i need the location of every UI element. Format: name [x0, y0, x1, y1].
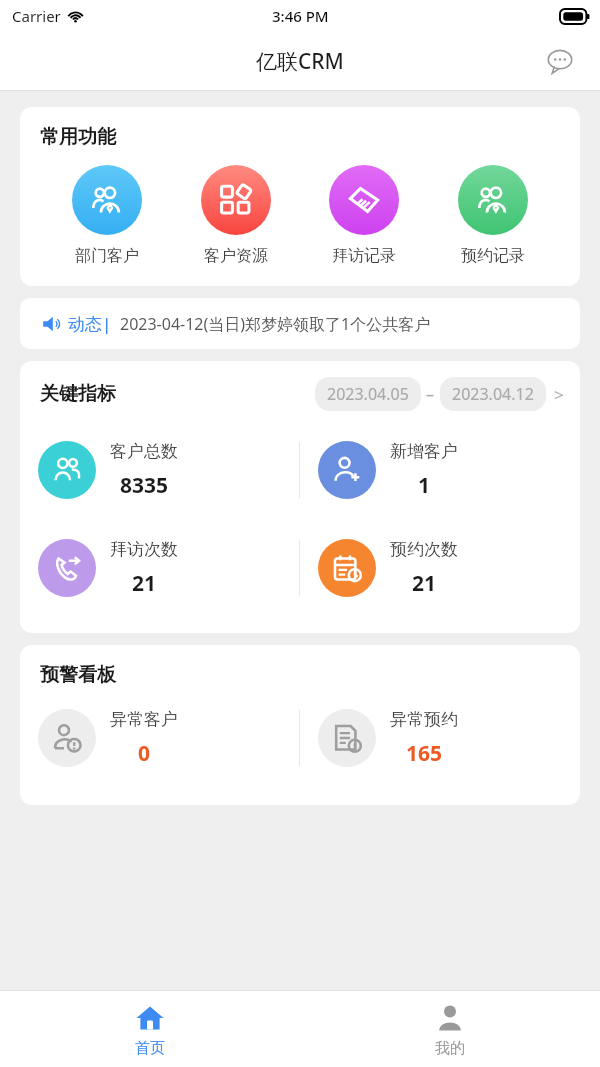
staticText: 首页 — [135, 1039, 165, 1058]
button[interactable]: 异常预约 — [300, 691, 580, 785]
button[interactable]: 异常客户 — [20, 691, 299, 785]
button[interactable]: 拜访记录 — [323, 163, 405, 268]
button[interactable]: 部门客户 — [66, 163, 148, 268]
staticText: 2023-04-12(当日)郑梦婷领取了1个公共客户 — [120, 313, 431, 335]
button[interactable]: 我的 — [300, 991, 600, 1067]
button[interactable]: 客户总数 — [20, 421, 299, 519]
staticText: 我的 — [435, 1039, 465, 1058]
staticText: 拜访记录 — [332, 246, 396, 266]
staticText: 1 — [418, 471, 431, 500]
staticText: 8335 — [120, 471, 169, 500]
staticText: 客户总数 — [110, 441, 178, 462]
staticText: 预约次数 — [390, 539, 458, 560]
staticText: 关键指标 — [40, 382, 116, 406]
button[interactable]: 预约次数 — [300, 519, 580, 617]
staticText: 异常客户 — [110, 709, 178, 730]
staticText: 2023.04.12 — [452, 383, 534, 405]
staticText: 拜访次数 — [110, 539, 178, 560]
button[interactable]: 预约记录 — [452, 163, 534, 268]
button[interactable]: 拜访次数 — [20, 519, 299, 617]
staticText: 165 — [406, 739, 443, 768]
button[interactable]: Messages — [542, 43, 578, 79]
staticText: 21 — [412, 569, 437, 598]
button[interactable]: 2023.04.05 — [315, 377, 564, 411]
staticText: 异常预约 — [390, 709, 458, 730]
button[interactable]: 动态| — [20, 298, 580, 349]
staticText: Carrier — [12, 6, 61, 26]
staticText: 新增客户 — [390, 441, 458, 462]
staticText: 预警看板 — [40, 663, 116, 687]
staticText: 客户资源 — [204, 246, 268, 266]
staticText: – — [426, 383, 435, 405]
staticText: 0 — [138, 739, 151, 768]
staticText: > — [554, 383, 564, 406]
button[interactable]: 新增客户 — [300, 421, 580, 519]
staticText: 动态| — [68, 312, 112, 335]
staticText: 常用功能 — [40, 125, 116, 149]
staticText: 3:46 PM — [272, 6, 329, 26]
button[interactable]: 首页 — [0, 991, 300, 1067]
button[interactable]: 客户资源 — [195, 163, 277, 268]
staticText: 预约记录 — [461, 246, 525, 266]
staticText: 2023.04.05 — [327, 383, 409, 405]
staticText: 部门客户 — [75, 246, 139, 266]
staticText: 亿联CRM — [256, 47, 344, 76]
staticText: 21 — [132, 569, 157, 598]
